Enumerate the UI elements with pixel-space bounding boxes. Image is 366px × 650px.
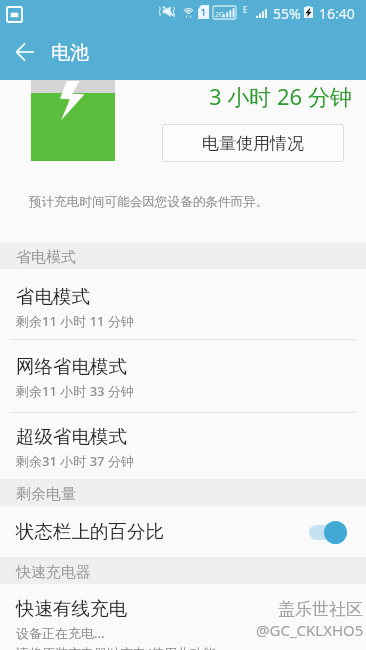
- staticText: 状态栏上的百分比: [16, 520, 309, 543]
- staticText: 请将原装充电器以充电/使用此功能: [16, 644, 217, 650]
- staticText: E: [243, 4, 248, 15]
- staticText: 网络省电模式: [16, 355, 127, 378]
- staticText: 2G: [215, 10, 225, 20]
- staticText: 超级省电模式: [16, 425, 127, 448]
- button[interactable]: 状态栏上的百分比: [0, 506, 366, 557]
- staticText: 预计充电时间可能会因您设备的条件而异。: [29, 194, 269, 210]
- staticText: 剩余电量: [16, 485, 76, 504]
- staticText: 快速有线充电: [16, 597, 127, 620]
- staticText: 省电模式: [16, 285, 90, 308]
- staticText: 设备正在充电...: [16, 624, 105, 642]
- staticText: 省电模式: [16, 248, 76, 267]
- button[interactable]: 电量使用情况: [162, 124, 344, 162]
- staticText: 快速充电器: [16, 563, 91, 582]
- staticText: 盖乐世社区: [278, 599, 363, 620]
- button[interactable]: 省电模式: [0, 285, 366, 339]
- button[interactable]: 网络省电模式: [0, 355, 366, 409]
- button[interactable]: 快速有线充电: [0, 597, 366, 650]
- staticText: 电池: [51, 41, 89, 65]
- staticText: 剩余11 小时 33 分钟: [16, 382, 134, 400]
- button[interactable]: 超级省电模式: [0, 425, 366, 479]
- staticText: 剩余11 小时 11 分钟: [16, 312, 134, 330]
- staticText: @GC_CKLXHO5: [256, 620, 364, 640]
- staticText: 3 小时 26 分钟: [209, 81, 352, 111]
- staticText: 剩余31 小时 37 分钟: [16, 452, 134, 470]
- staticText: 电量使用情况: [202, 133, 304, 154]
- staticText: 55%: [273, 4, 301, 23]
- staticText: 16:40: [319, 4, 355, 23]
- button[interactable]: Back: [7, 34, 43, 70]
